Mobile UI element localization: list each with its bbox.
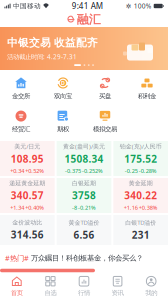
button[interactable]: 自选 <box>34 273 67 300</box>
staticText: #热门# <box>5 253 29 263</box>
staticText: 314.56 <box>11 228 44 241</box>
button[interactable]: D <box>42 77 84 100</box>
staticText: 金价波动比 <box>12 219 42 226</box>
button[interactable]: 黄金(盎司)/美元 <box>57 141 111 176</box>
button[interactable]: 资讯 <box>101 273 134 300</box>
staticText: 黄金TD溢价 <box>68 218 99 227</box>
staticText: 资讯 <box>112 289 124 297</box>
button[interactable]: 白银TD溢价 <box>113 215 168 245</box>
button[interactable]: 黄金TD溢价 <box>57 215 111 245</box>
button[interactable]: 积利金 <box>126 77 168 100</box>
staticText: ✲ 100% <box>126 1 154 11</box>
button[interactable]: 模拟交易 <box>84 110 126 133</box>
button[interactable]: 买盘 <box>84 77 126 100</box>
staticText: 6.56 <box>73 228 94 242</box>
staticText: 白银延期 <box>72 180 96 187</box>
staticText: 双向宝 <box>54 92 72 100</box>
staticText: 模拟交易 <box>93 125 117 133</box>
staticText: 活动截止时间: 4.29-7.31 <box>7 52 77 61</box>
staticText: 自选 <box>44 289 56 297</box>
staticText: 经贸汇 <box>12 125 30 133</box>
staticText: 首页 <box>11 289 23 297</box>
staticText: 融汇 <box>77 12 101 27</box>
staticText: 我的 <box>145 289 157 297</box>
staticText: 期权 <box>57 125 69 133</box>
staticText: 9:41 AM <box>72 1 103 11</box>
staticText: 175.52 <box>124 152 157 166</box>
button[interactable]: 中银交易 收益配齐 <box>0 27 168 70</box>
staticText: 340.57 <box>11 189 44 202</box>
staticText: +1.16 +0.38% <box>124 204 158 211</box>
button[interactable]: 金交所 <box>0 77 42 100</box>
staticText: 1508.34 <box>64 152 103 166</box>
staticText: 行情 <box>78 289 90 297</box>
staticText: 买盘 <box>99 92 111 100</box>
staticText: +1.34 +0.40% <box>10 204 44 211</box>
staticText: 3758 <box>72 189 96 202</box>
button[interactable]: 首页 <box>0 273 34 300</box>
button[interactable]: 白银延期 <box>57 178 111 213</box>
button[interactable]: 递延黄金延期 <box>0 178 55 213</box>
staticText: 万众瞩目！科创板基金，你会买么？ <box>31 253 143 263</box>
staticText: -8 -0.21% <box>72 204 96 211</box>
staticText: 231 <box>132 228 150 242</box>
staticText: 中国移动 <box>11 2 43 10</box>
button[interactable]: 金价波动比 <box>0 215 55 245</box>
staticText: 积利金 <box>138 92 156 100</box>
staticText: 108.95 <box>11 152 44 166</box>
button[interactable]: 黄金延期 <box>113 178 168 213</box>
button[interactable]: 铂金(克)/人民币 <box>113 141 168 176</box>
staticText: -0.25 -0.28% <box>125 167 157 175</box>
button[interactable]: #热门# <box>0 248 168 268</box>
staticText: 340.22 <box>124 189 157 202</box>
staticText: 金交所 <box>12 92 30 100</box>
staticText: +0.34 +0.52% <box>10 167 44 175</box>
staticText: 黄金(盎司)/美元 <box>63 142 105 150</box>
button[interactable]: 经贸汇 <box>0 110 42 133</box>
staticText: -0.375 -0.252% <box>65 167 103 175</box>
button[interactable]: 我的 <box>134 273 168 300</box>
staticText: 中银交易 收益配齐 <box>7 36 98 49</box>
button[interactable]: 美元/日元 <box>0 141 55 176</box>
staticText: 递延黄金延期 <box>9 180 45 187</box>
staticText: 美元/日元 <box>14 142 40 150</box>
staticText: 白银TD溢价 <box>125 218 156 227</box>
staticText: 黄金延期 <box>129 180 153 187</box>
button[interactable]: 行情 <box>67 273 101 300</box>
button[interactable]: 期权 <box>42 110 84 133</box>
staticText: 铂金(克)/人民币 <box>120 142 162 150</box>
staticText: D <box>61 79 65 87</box>
